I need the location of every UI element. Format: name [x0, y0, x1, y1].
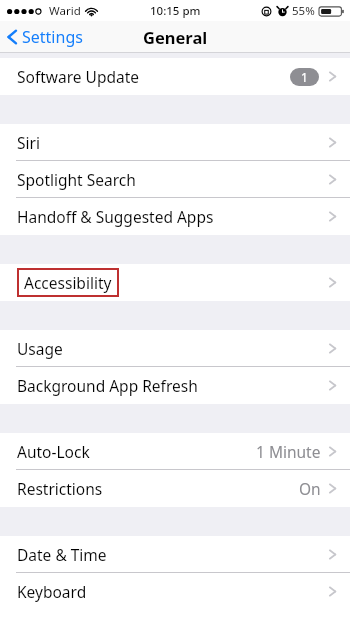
staticText: 55% — [292, 3, 315, 19]
button[interactable]: Settings — [0, 22, 91, 52]
staticText: On — [299, 478, 321, 499]
button[interactable]: Background App Refresh — [0, 367, 350, 404]
other: Battery 55 percent — [319, 6, 344, 17]
staticText: Auto-Lock — [17, 441, 90, 462]
button[interactable]: Software Update — [0, 58, 350, 95]
staticText: Date & Time — [17, 544, 107, 565]
staticText: 10:15 pm — [150, 3, 201, 19]
staticText: 1 Minute — [256, 441, 321, 462]
other: Alarm — [277, 6, 288, 17]
staticText: General — [143, 26, 208, 48]
staticText: Handoff & Suggested Apps — [17, 206, 214, 227]
staticText: Keyboard — [17, 581, 87, 602]
staticText: Accessibility — [24, 272, 112, 293]
button[interactable]: Auto-Lock — [0, 433, 350, 470]
button[interactable]: Spotlight Search — [0, 161, 350, 198]
button[interactable]: Handoff & Suggested Apps — [0, 198, 350, 235]
button[interactable]: Usage — [0, 330, 350, 367]
button[interactable]: Siri — [0, 124, 350, 161]
staticText: Background App Refresh — [17, 375, 198, 396]
staticText: Restrictions — [17, 478, 103, 499]
button[interactable]: Date & Time — [0, 536, 350, 573]
staticText: 1 — [301, 69, 308, 85]
button[interactable]: Keyboard — [0, 573, 350, 610]
staticText: Settings — [22, 26, 83, 48]
button[interactable]: Accessibility — [0, 264, 350, 301]
button[interactable]: Restrictions — [0, 470, 350, 507]
staticText: Spotlight Search — [17, 169, 136, 190]
other: Rotation lock — [261, 6, 272, 17]
staticText: Software Update — [17, 66, 139, 87]
staticText: Usage — [17, 338, 63, 359]
staticText: Siri — [17, 132, 40, 153]
staticText: Warid — [49, 3, 81, 19]
